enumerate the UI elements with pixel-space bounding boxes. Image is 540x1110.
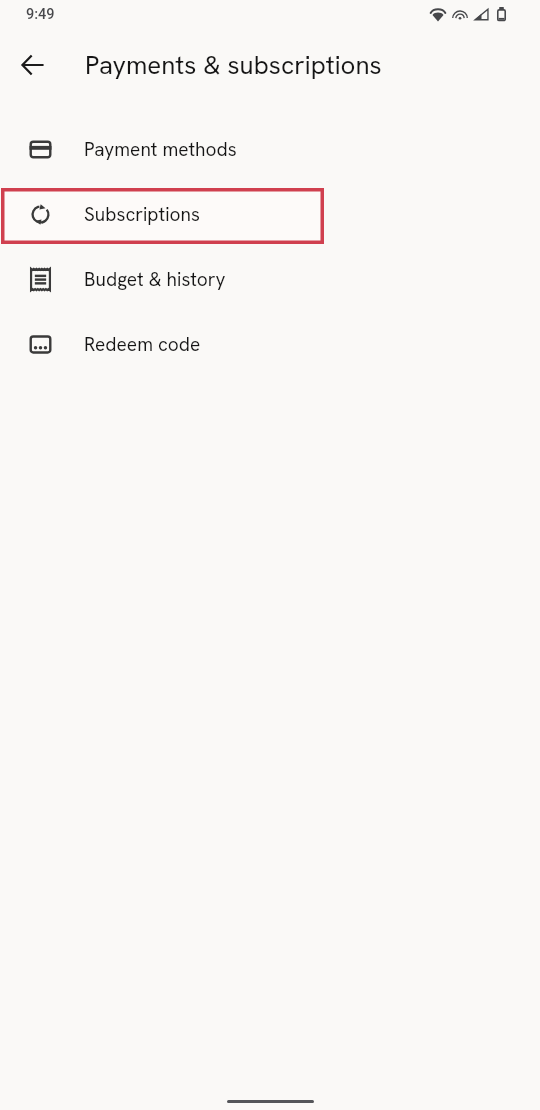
staticText: Payment methods <box>84 137 237 162</box>
staticText: Budget & history <box>84 267 226 292</box>
staticText: Payments & subscriptions <box>85 48 382 82</box>
button[interactable]: Budget & history <box>0 247 540 312</box>
staticText: 9:49 <box>26 6 55 23</box>
button[interactable]: Payment methods <box>0 117 540 182</box>
staticText: Redeem code <box>84 332 201 357</box>
button[interactable]: Subscriptions <box>0 182 540 247</box>
button[interactable]: Back <box>10 42 56 88</box>
button[interactable]: Redeem code <box>0 312 540 377</box>
staticText: Subscriptions <box>84 202 200 227</box>
